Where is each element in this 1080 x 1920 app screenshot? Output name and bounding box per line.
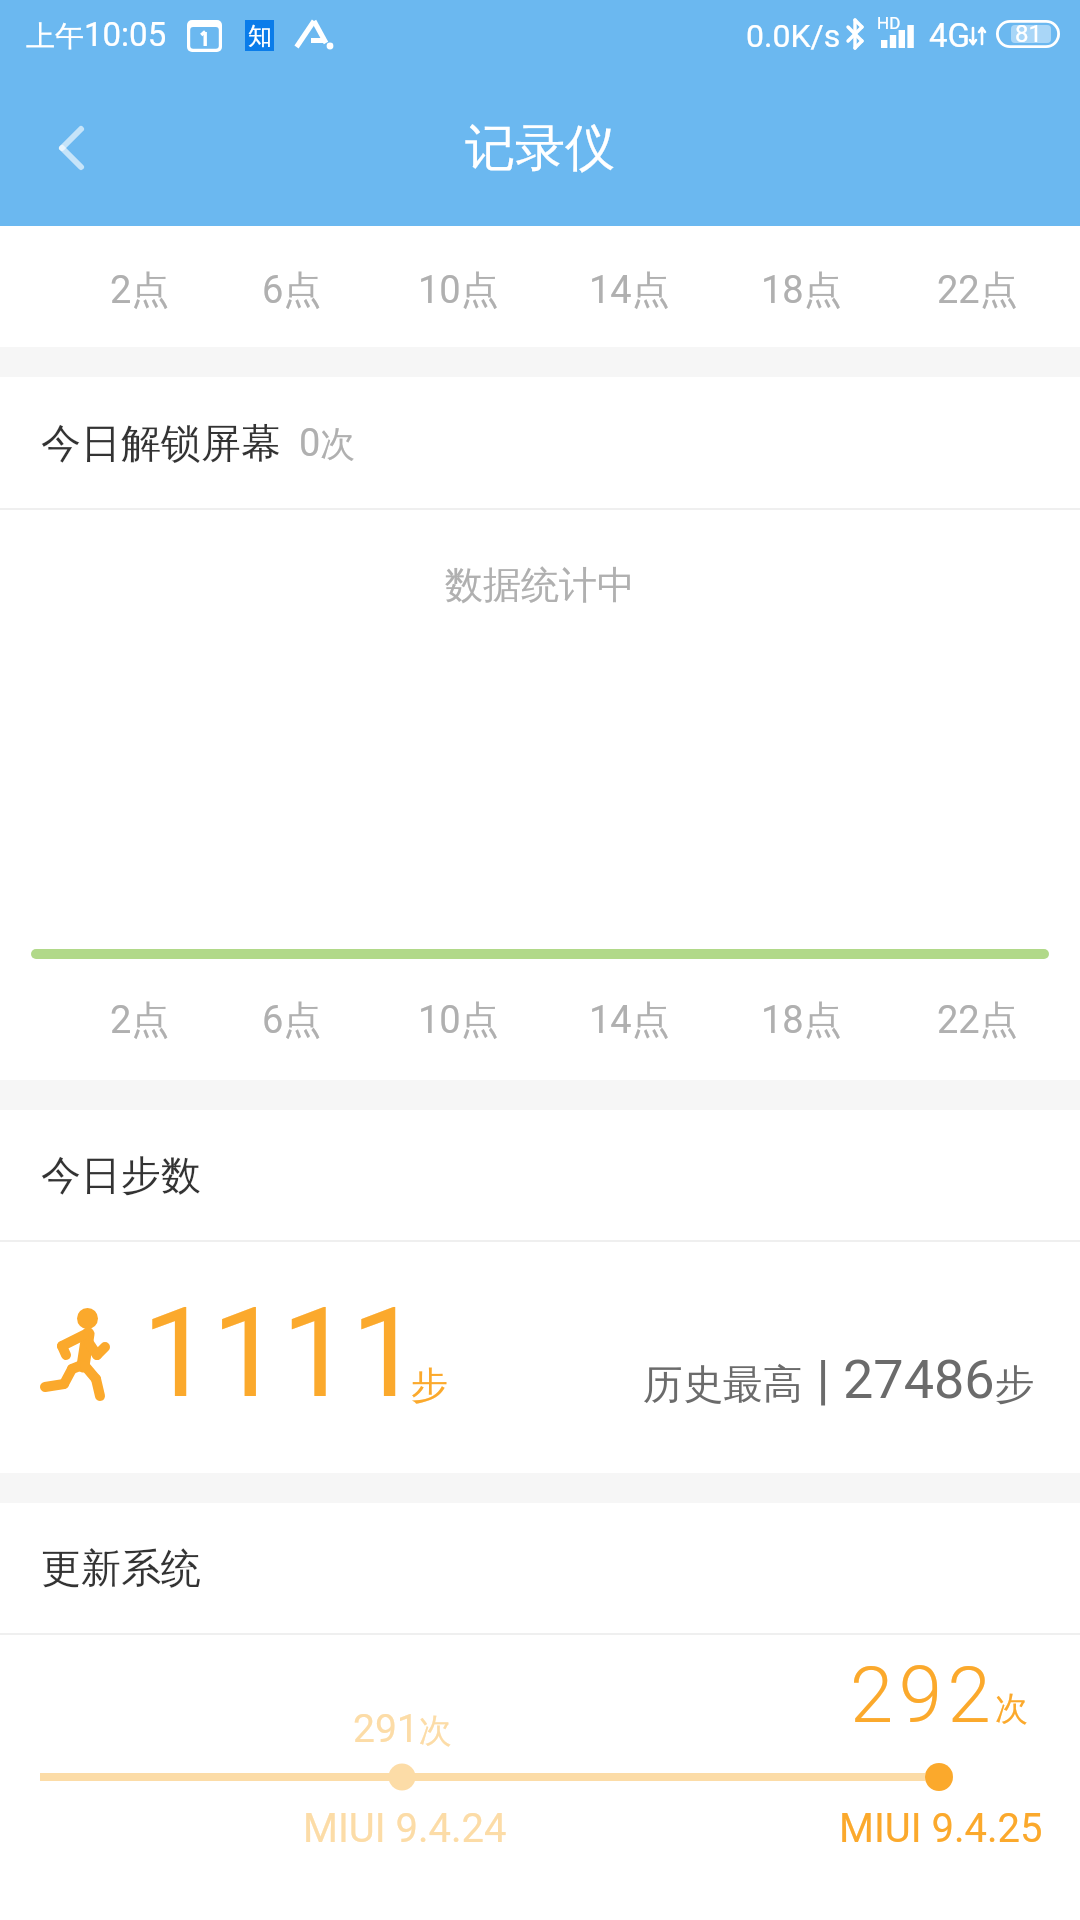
staticText: 步 xyxy=(411,1362,448,1409)
staticText: 历史最高 | 27486步 xyxy=(643,1348,1035,1411)
staticText: 18点 xyxy=(761,266,842,314)
staticText: 今日步数 xyxy=(41,1150,201,1200)
staticText: 14点 xyxy=(589,996,670,1044)
staticText: 10点 xyxy=(418,996,499,1044)
staticText: 知 xyxy=(248,21,272,51)
staticText: 数据统计中 xyxy=(0,561,1080,609)
staticText: 22点 xyxy=(937,266,1018,314)
staticText: 上午10:05 xyxy=(26,15,167,54)
staticText: 18点 xyxy=(761,996,842,1044)
staticText: 次 xyxy=(995,1688,1028,1730)
button[interactable]: MIUI 9.4.24, 291 times xyxy=(372,1747,432,1807)
staticText: 今日解锁屏幕 xyxy=(41,418,281,468)
staticText: 4G xyxy=(929,16,971,55)
staticText: 81 xyxy=(1015,20,1042,48)
staticText: 0.0K/s xyxy=(746,17,841,55)
staticText: 14点 xyxy=(589,266,670,314)
staticText: 记录仪 xyxy=(465,117,615,180)
button[interactable]: Back xyxy=(0,86,124,210)
staticText: 10点 xyxy=(418,266,499,314)
staticText: 1111 xyxy=(142,1281,421,1426)
staticText: 更新系统 xyxy=(41,1543,201,1593)
staticText: 291次 xyxy=(353,1706,452,1752)
button[interactable]: 今日解锁屏幕 xyxy=(0,377,1080,508)
staticText: HD xyxy=(877,13,901,33)
staticText: 6点 xyxy=(262,996,322,1044)
staticText: 0次 xyxy=(299,421,356,467)
button[interactable]: 更新系统 xyxy=(0,1503,1080,1633)
staticText: 292 xyxy=(850,1650,997,1741)
staticText: 2点 xyxy=(110,996,170,1044)
staticText: MIUI 9.4.25 xyxy=(839,1805,1043,1852)
button[interactable]: 今日步数 xyxy=(0,1110,1080,1240)
staticText: 2点 xyxy=(110,266,170,314)
staticText: 22点 xyxy=(937,996,1018,1044)
button[interactable]: MIUI 9.4.25, 292 times xyxy=(909,1747,969,1807)
staticText: 6点 xyxy=(262,266,322,314)
staticText: MIUI 9.4.24 xyxy=(303,1805,507,1852)
